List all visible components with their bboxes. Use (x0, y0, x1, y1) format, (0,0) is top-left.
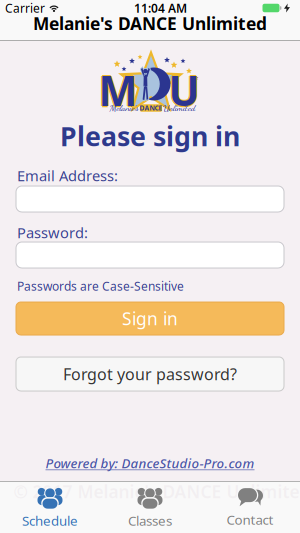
staticText: Forgot your password? (63, 363, 237, 385)
button[interactable]: Classes (100, 482, 200, 533)
staticText: © 2017 Melanie's DANCE Unlimited (13, 480, 300, 503)
staticText: U (170, 62, 201, 118)
staticText: Unlimited (163, 102, 195, 114)
button[interactable]: Contact (200, 483, 300, 532)
button[interactable]: Forgot your password? (0, 357, 300, 391)
staticText: Email Address: (17, 166, 118, 185)
staticText: U (168, 62, 199, 118)
staticText: Classes (128, 512, 172, 529)
button[interactable]: Schedule (0, 482, 100, 533)
staticText: M (100, 62, 139, 118)
button[interactable]: Password (0, 242, 300, 268)
staticText: Melanie's DANCE Unlimited (33, 12, 267, 35)
staticText: M (98, 62, 137, 118)
button[interactable]: Email Address (0, 186, 300, 212)
staticText: Password: (17, 223, 88, 242)
staticText: M (98, 63, 137, 119)
staticText: U (168, 63, 199, 119)
staticText: 11:04 AM (134, 0, 187, 16)
staticText: Schedule (22, 512, 78, 529)
staticText: Passwords are Case-Sensitive (17, 278, 184, 294)
button[interactable]: Powered by: DanceStudio-Pro.com (45, 454, 254, 481)
staticText: M (97, 62, 136, 118)
staticText: U (167, 62, 198, 118)
staticText: DANCE (139, 104, 162, 112)
staticText: Please sign in (60, 118, 240, 154)
staticText: M (98, 61, 137, 117)
staticText: Carrier (5, 0, 45, 16)
staticText: Sign in (122, 307, 178, 330)
button[interactable]: Sign in (0, 302, 300, 335)
staticText: Melanie's (109, 102, 138, 114)
staticText: U (168, 61, 199, 117)
staticText: Contact (226, 511, 273, 528)
staticText: Powered by: DanceStudio-Pro.com (45, 454, 254, 472)
